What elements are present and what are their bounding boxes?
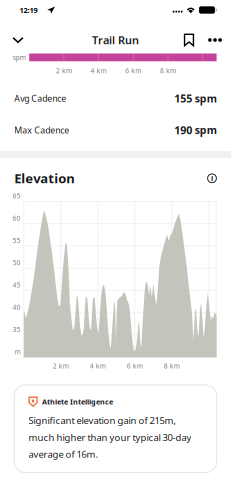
staticText: Max Cadence <box>14 124 69 136</box>
staticText: i <box>211 173 213 183</box>
staticText: 35 <box>12 325 20 334</box>
staticText: 65 <box>12 191 20 200</box>
staticText: 8 km <box>160 66 176 75</box>
staticText: 2 km <box>56 66 72 75</box>
staticText: 40 <box>12 303 20 312</box>
staticText: 6 km <box>125 66 141 75</box>
button[interactable]: Save <box>176 27 202 53</box>
staticText: 2 km <box>53 361 69 371</box>
staticText: spm <box>13 53 26 62</box>
staticText: Elevation <box>14 169 74 187</box>
staticText: Avg Cadence <box>14 92 66 104</box>
button[interactable]: About Elevation <box>201 167 223 189</box>
staticText: 50 <box>12 258 20 267</box>
staticText: Trail Run <box>92 33 139 47</box>
staticText: spm <box>195 91 217 105</box>
button[interactable]: Collapse <box>3 27 33 53</box>
staticText: 8 km <box>164 361 180 371</box>
staticText: spm <box>195 123 217 137</box>
staticText: 155 <box>174 91 192 105</box>
button[interactable]: More options <box>202 27 228 53</box>
button[interactable]: Athlete Intelligence <box>14 385 217 473</box>
staticText: 55 <box>12 236 20 245</box>
staticText: Significant elevation gain of 215m, much… <box>28 414 191 461</box>
staticText: Athlete Intelligence <box>42 397 113 407</box>
staticText: 60 <box>12 214 20 223</box>
staticText: 45 <box>12 280 20 289</box>
staticText: m <box>14 347 20 356</box>
staticText: 6 km <box>127 361 143 371</box>
staticText: 4 km <box>90 361 106 371</box>
staticText: 190 <box>174 123 192 137</box>
staticText: 4 km <box>91 66 107 75</box>
staticText: 12:19 <box>19 5 37 15</box>
